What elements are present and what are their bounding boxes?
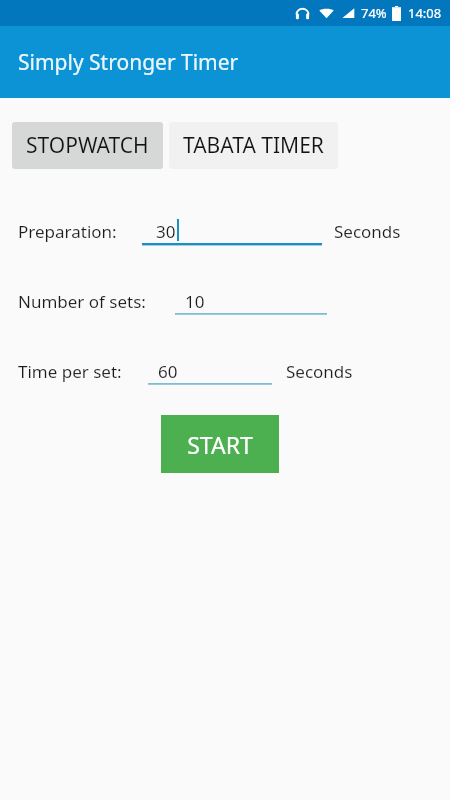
staticText: STOPWATCH: [26, 131, 149, 160]
button[interactable]: STOPWATCH: [12, 122, 163, 169]
button[interactable]: 10: [175, 285, 327, 317]
staticText: 30: [156, 220, 176, 243]
staticText: 10: [185, 290, 205, 313]
staticText: Seconds: [286, 360, 353, 383]
staticText: 74%: [361, 4, 387, 22]
button[interactable]: 60: [148, 355, 272, 387]
staticText: Seconds: [334, 220, 401, 243]
staticText: 60: [158, 360, 178, 383]
staticText: START: [187, 429, 253, 460]
staticText: Time per set:: [18, 360, 122, 383]
staticText: Simply Stronger Timer: [18, 48, 239, 77]
button[interactable]: 30: [142, 215, 322, 247]
staticText: TABATA TIMER: [183, 131, 324, 160]
staticText: 14:08: [408, 4, 442, 22]
staticText: Preparation:: [18, 220, 117, 243]
staticText: Number of sets:: [18, 290, 146, 313]
button[interactable]: TABATA TIMER: [169, 122, 338, 169]
button[interactable]: START: [161, 415, 279, 473]
